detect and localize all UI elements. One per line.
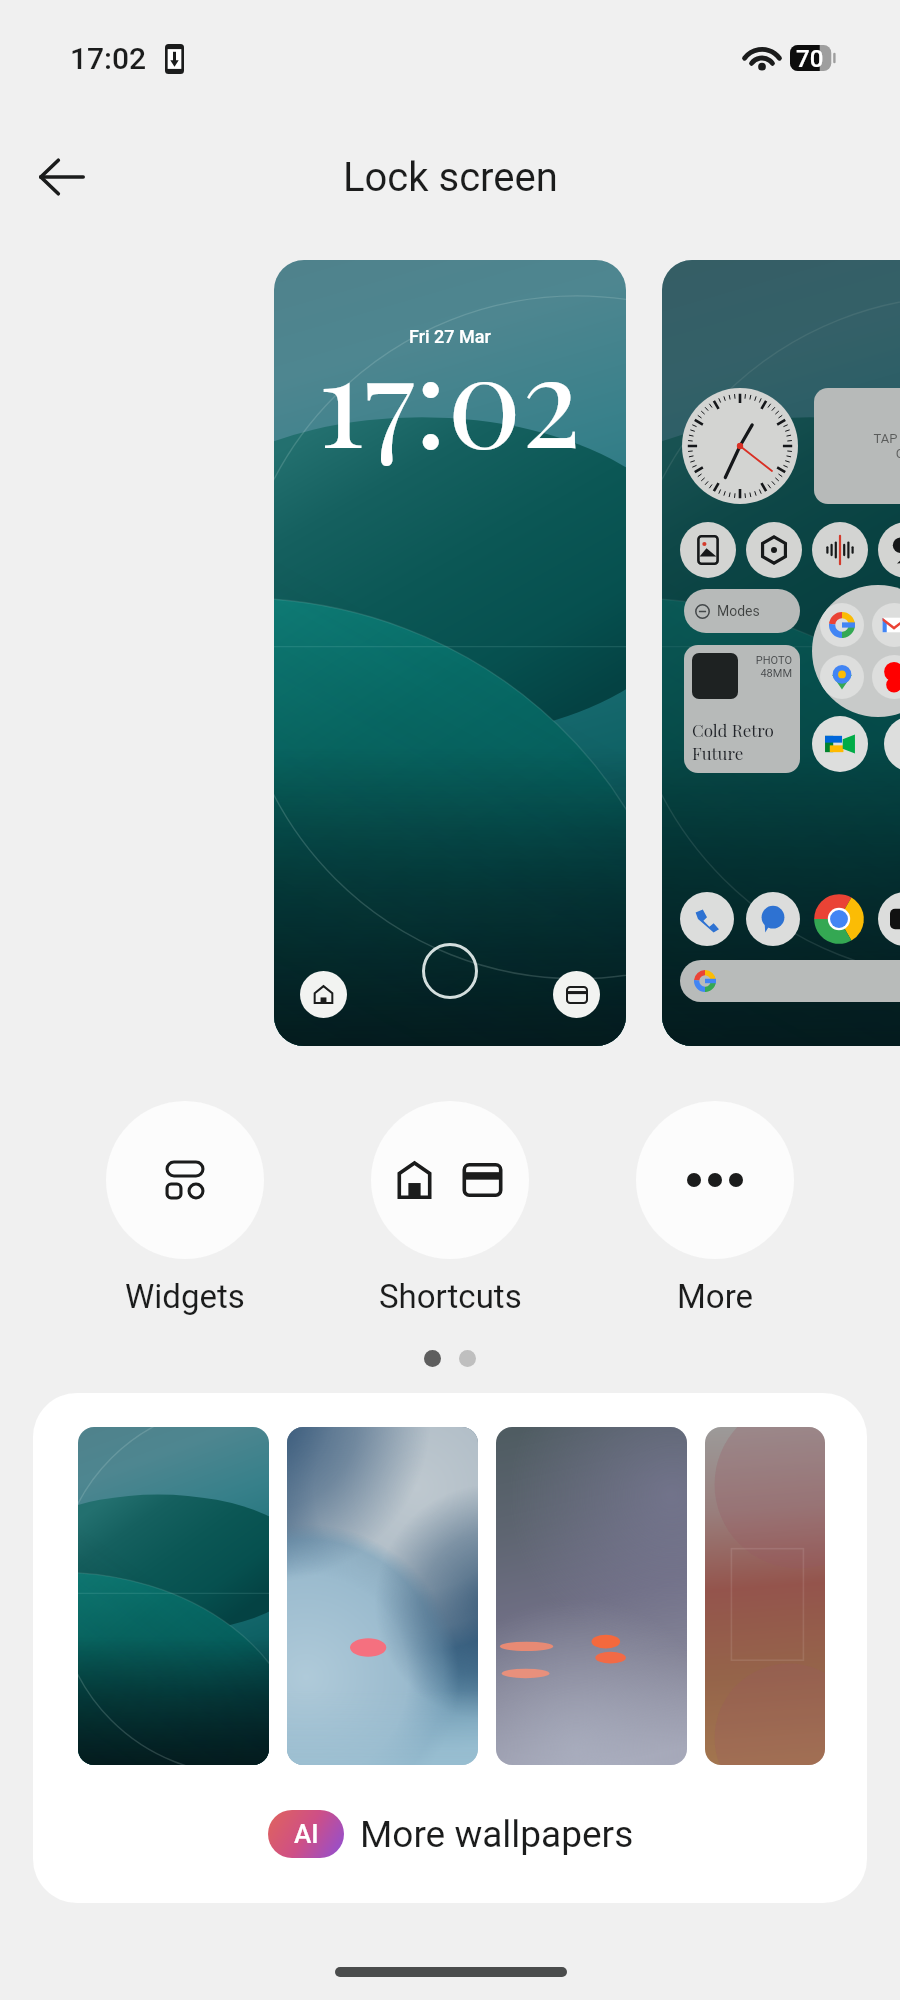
- button[interactable]: More: [636, 1101, 794, 1316]
- staticText: 17:02: [318, 314, 582, 479]
- staticText: Shortcuts: [379, 1277, 522, 1316]
- staticText: Widgets: [125, 1277, 245, 1316]
- button[interactable]: AI: [268, 1810, 634, 1858]
- button[interactable]: Wallet shortcut: [553, 971, 600, 1018]
- staticText: 17:02: [70, 41, 147, 76]
- staticText: TAP TO ADD CITY: [873, 431, 900, 461]
- staticText: Modes: [717, 603, 760, 619]
- staticText: 70: [796, 45, 824, 71]
- button[interactable]: Lock screen preview: [274, 260, 626, 1046]
- staticText: Cold Retro Future: [692, 719, 774, 765]
- staticText: More wallpapers: [360, 1813, 634, 1856]
- staticText: More: [677, 1277, 754, 1316]
- button[interactable]: Wallpaper option 3: [496, 1427, 687, 1765]
- button[interactable]: Wallpaper option 2: [287, 1427, 478, 1765]
- button[interactable]: Widgets: [106, 1101, 264, 1316]
- button[interactable]: Wallpaper option 1: [78, 1427, 269, 1765]
- button[interactable]: Page 1: [424, 1350, 441, 1367]
- button[interactable]: Home shortcut: [300, 971, 347, 1018]
- staticText: AI: [294, 1819, 319, 1849]
- button[interactable]: Shortcuts: [371, 1101, 529, 1316]
- staticText: Fri 27 Mar: [409, 326, 491, 347]
- staticText: PHOTO 48MM: [755, 654, 792, 680]
- button[interactable]: Wallpaper option 4: [705, 1427, 825, 1765]
- button[interactable]: Home screen preview: [662, 260, 900, 1046]
- button[interactable]: Back: [26, 141, 98, 213]
- button[interactable]: Page 2: [459, 1350, 476, 1367]
- staticText: Lock screen: [343, 154, 558, 201]
